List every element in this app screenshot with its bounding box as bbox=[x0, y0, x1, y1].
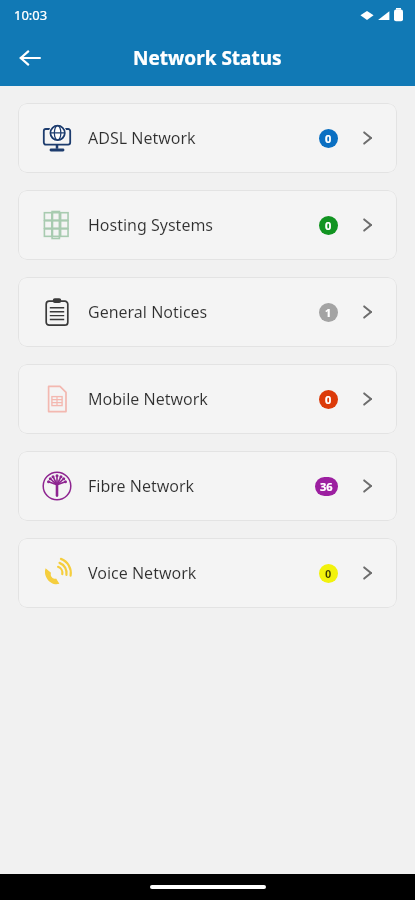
staticText: General Notices bbox=[88, 301, 319, 323]
staticText: 0 bbox=[325, 131, 332, 146]
staticText: 10:03 bbox=[14, 6, 48, 24]
button[interactable]: Hosting Systems bbox=[18, 190, 397, 260]
staticText: Voice Network bbox=[88, 562, 319, 584]
staticText: Hosting Systems bbox=[88, 214, 319, 236]
button[interactable]: Mobile Network bbox=[18, 364, 397, 434]
staticText: ADSL Network bbox=[88, 127, 319, 149]
button[interactable]: ADSL Network bbox=[18, 103, 397, 173]
button[interactable]: General Notices bbox=[18, 277, 397, 347]
button[interactable]: Back bbox=[8, 36, 52, 80]
staticText: 0 bbox=[325, 218, 332, 233]
staticText: Fibre Network bbox=[88, 475, 315, 497]
staticText: 0 bbox=[325, 392, 332, 407]
button[interactable]: Fibre Network bbox=[18, 451, 397, 521]
button[interactable]: Voice Network bbox=[18, 538, 397, 608]
staticText: Mobile Network bbox=[88, 388, 319, 410]
staticText: Network Status bbox=[133, 45, 282, 71]
staticText: 36 bbox=[320, 479, 333, 494]
staticText: 0 bbox=[325, 566, 332, 581]
staticText: 1 bbox=[325, 305, 332, 320]
